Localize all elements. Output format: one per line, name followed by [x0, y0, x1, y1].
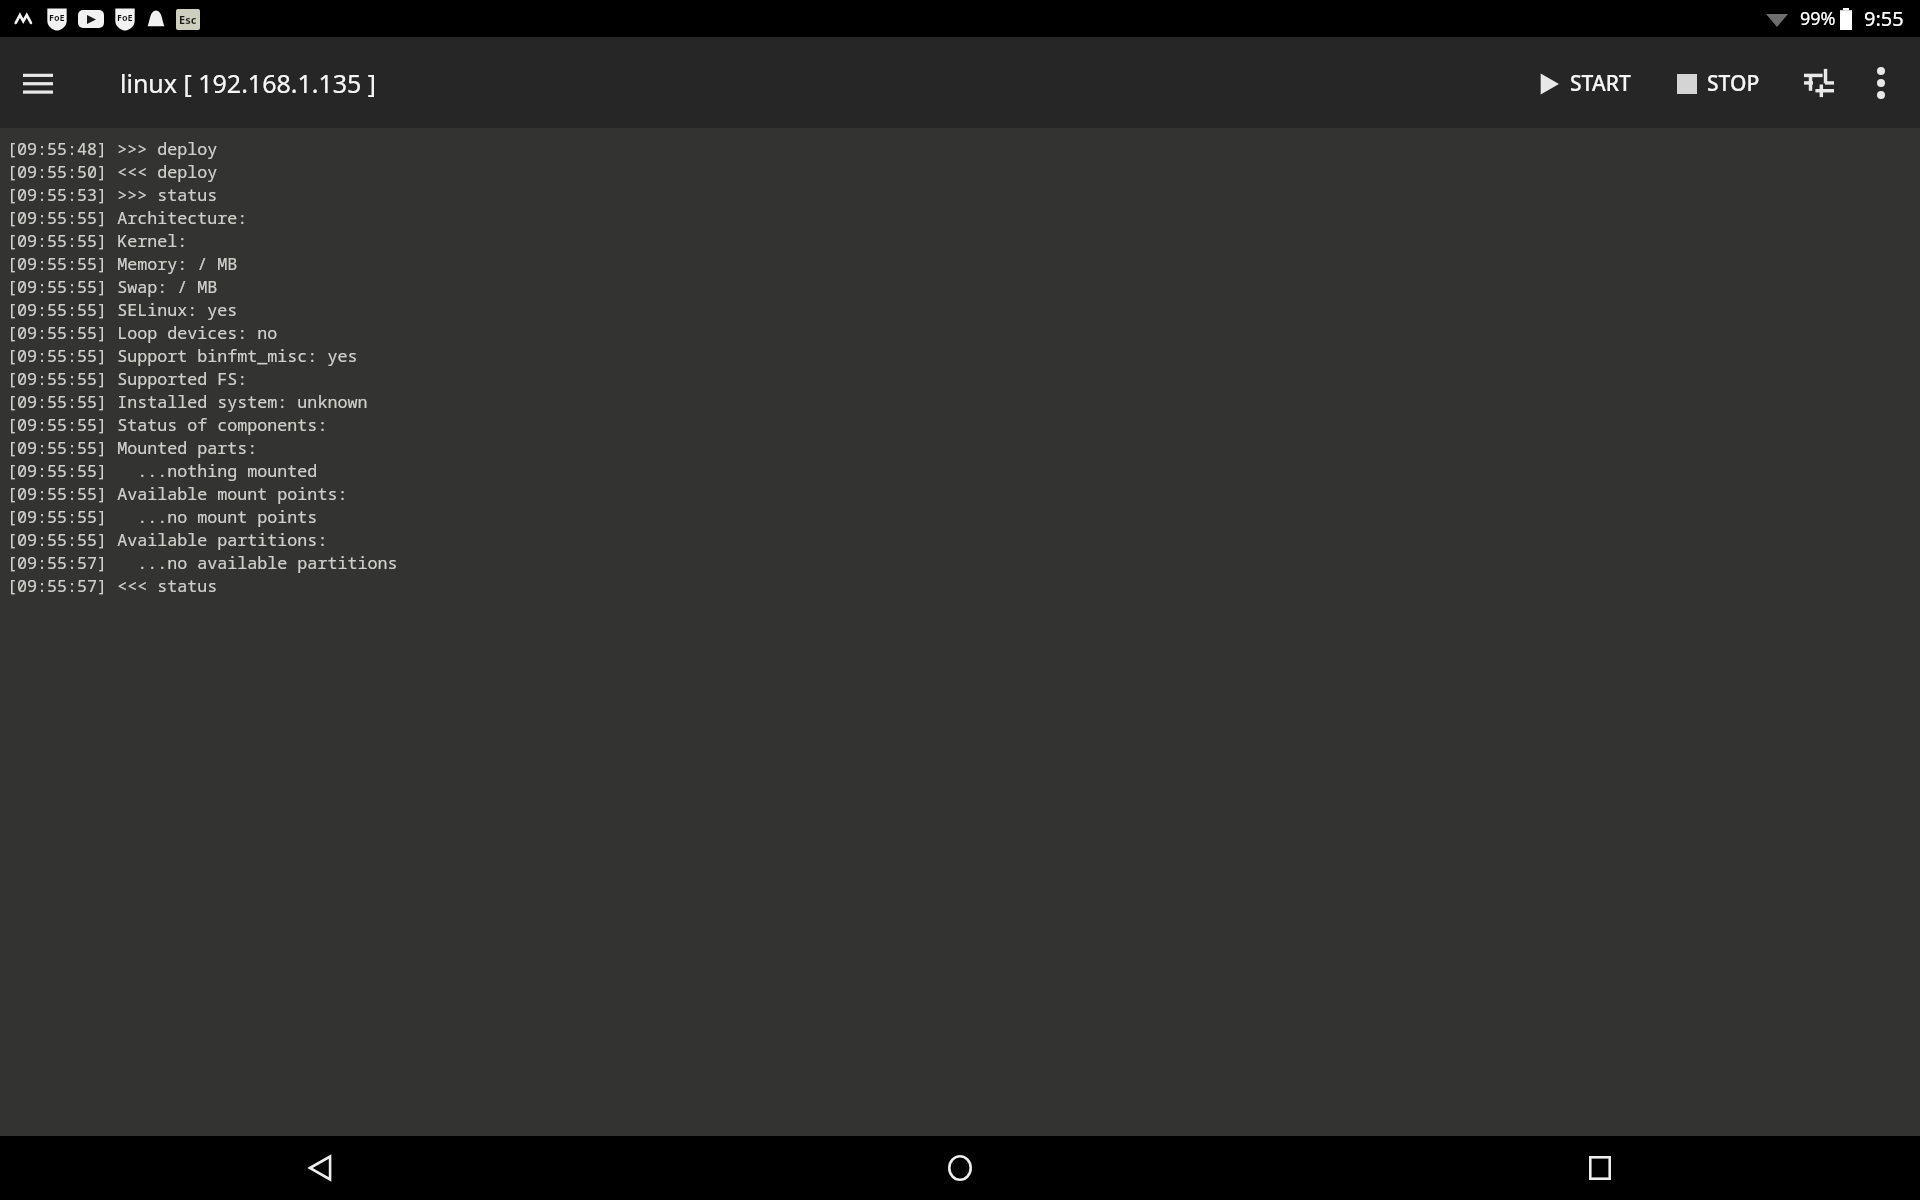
staticText: [09:55:57] ...no available partitions: [7, 551, 398, 574]
staticText: [09:55:55] Support binfmt_misc: yes: [7, 344, 358, 367]
button[interactable]: More options: [1850, 52, 1912, 114]
staticText: 99%: [1800, 6, 1836, 31]
staticText: [09:55:55] Mounted parts:: [7, 436, 258, 459]
staticText: linux [ 192.168.1.135 ]: [120, 66, 377, 100]
staticText: [09:55:55] Memory: / MB: [7, 252, 238, 275]
staticText: [09:55:55] Installed system: unknown: [7, 390, 368, 413]
staticText: [09:55:55] Available partitions:: [7, 528, 328, 551]
staticText: [09:55:55] Supported FS:: [7, 367, 248, 390]
staticText: [09:55:55] ...nothing mounted: [7, 459, 318, 482]
staticText: [09:55:50] <<< deploy: [7, 160, 218, 183]
button[interactable]: Back: [0, 1136, 640, 1200]
staticText: [09:55:55] Status of components:: [7, 413, 328, 436]
button[interactable]: Settings: [1788, 52, 1850, 114]
staticText: [09:55:48] >>> deploy: [7, 137, 218, 160]
staticText: START: [1570, 69, 1631, 98]
staticText: [09:55:55] ...no mount points: [7, 505, 318, 528]
button[interactable]: Open navigation menu: [0, 45, 76, 121]
staticText: [09:55:55] SELinux: yes: [7, 298, 238, 321]
staticText: [09:55:57] <<< status: [7, 574, 218, 597]
staticText: [09:55:55] Kernel:: [7, 229, 188, 252]
staticText: FoE: [49, 11, 65, 23]
button[interactable]: STOP: [1663, 55, 1774, 112]
staticText: Esc: [179, 12, 197, 27]
staticText: STOP: [1707, 69, 1760, 98]
button[interactable]: Recent apps: [1280, 1136, 1920, 1200]
staticText: [09:55:55] Available mount points:: [7, 482, 348, 505]
staticText: [09:55:55] Loop devices: no: [7, 321, 278, 344]
staticText: [09:55:55] Swap: / MB: [7, 275, 218, 298]
staticText: 9:55: [1864, 5, 1904, 32]
staticText: FoE: [117, 11, 133, 23]
staticText: [09:55:53] >>> status: [7, 183, 218, 206]
button[interactable]: START: [1525, 55, 1645, 112]
staticText: [09:55:55] Architecture:: [7, 206, 248, 229]
button[interactable]: Home: [640, 1136, 1280, 1200]
